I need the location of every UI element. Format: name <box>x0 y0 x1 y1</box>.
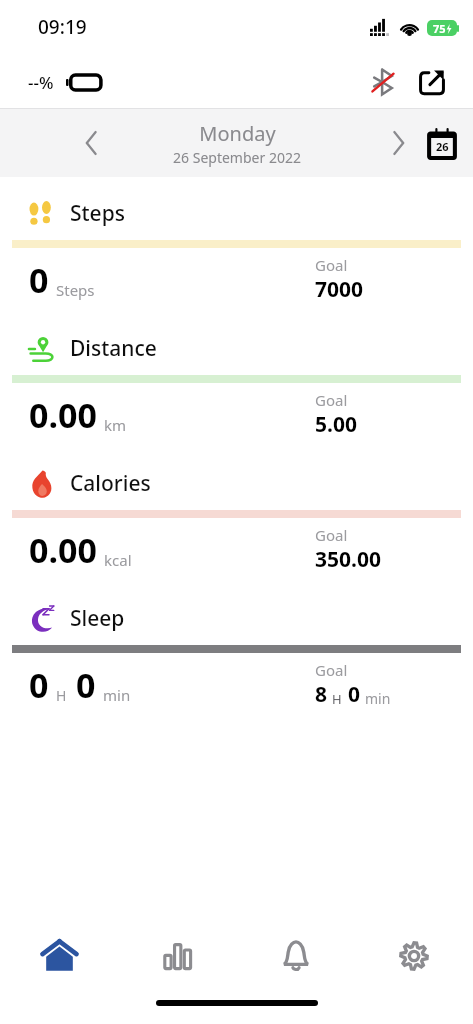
staticText: 26 September 2022 <box>173 148 301 167</box>
button[interactable]: Notifications <box>237 918 355 994</box>
staticText: min <box>365 689 391 708</box>
staticText: Goal <box>315 660 348 680</box>
staticText: Goal <box>315 525 348 545</box>
staticText: Distance <box>70 334 157 363</box>
staticText: 0.00 <box>29 527 97 573</box>
staticText: Steps <box>56 280 95 300</box>
staticText: H <box>56 686 67 705</box>
staticText: Goal <box>315 255 348 275</box>
staticText: 0 <box>29 662 49 708</box>
button[interactable]: Steps <box>12 187 461 311</box>
staticText: min <box>103 685 131 705</box>
staticText: 8 <box>315 680 328 709</box>
button[interactable]: Settings <box>355 918 473 994</box>
button[interactable]: Share <box>417 67 447 97</box>
staticText: 0 <box>76 662 96 708</box>
staticText: Sleep <box>70 604 125 633</box>
staticText: 0 <box>348 680 361 709</box>
button[interactable]: Pick date <box>425 126 459 160</box>
staticText: Monday <box>199 120 276 147</box>
button[interactable]: Statistics <box>119 918 237 994</box>
button[interactable]: Sleep <box>12 592 461 716</box>
button[interactable]: Bluetooth disabled <box>368 67 398 97</box>
staticText: 350.00 <box>315 545 381 574</box>
staticText: 7000 <box>315 275 364 304</box>
staticText: 0 <box>29 257 49 303</box>
staticText: km <box>104 415 127 435</box>
staticText: 75 <box>433 21 446 36</box>
staticText: 26 <box>436 139 449 154</box>
staticText: H <box>332 690 342 708</box>
button[interactable]: Next day <box>381 126 415 160</box>
button[interactable]: Distance <box>12 322 461 446</box>
staticText: Steps <box>70 199 125 228</box>
staticText: 09:19 <box>38 14 87 40</box>
staticText: 5.00 <box>315 410 357 439</box>
staticText: 0.00 <box>29 392 97 438</box>
button[interactable]: Home <box>0 918 119 994</box>
staticText: --% <box>28 71 54 94</box>
button[interactable]: Calories <box>12 457 461 581</box>
button[interactable]: Previous day <box>74 126 108 160</box>
staticText: Calories <box>70 469 151 498</box>
staticText: Goal <box>315 390 348 410</box>
staticText: kcal <box>104 550 132 570</box>
